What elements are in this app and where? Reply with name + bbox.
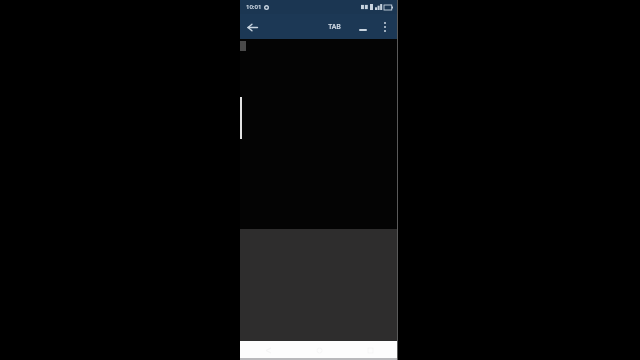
staticText: TAB [328, 22, 341, 32]
button[interactable]: Back [240, 15, 264, 39]
button[interactable]: More options [375, 17, 395, 37]
button[interactable]: Minimize [353, 17, 373, 37]
staticText: 10:01 [246, 3, 262, 11]
button[interactable]: TAB [324, 19, 345, 35]
